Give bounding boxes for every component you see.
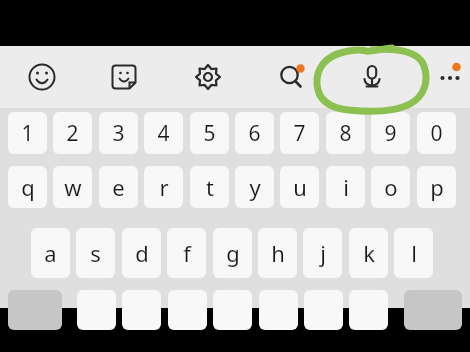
- button[interactable]: 8: [326, 112, 365, 154]
- button[interactable]: g: [213, 228, 252, 278]
- staticText: q: [21, 172, 35, 202]
- staticText: 0: [430, 119, 443, 148]
- button[interactable]: l: [394, 228, 433, 278]
- staticText: k: [363, 238, 375, 268]
- staticText: u: [293, 172, 307, 202]
- button[interactable]: [259, 290, 298, 330]
- button[interactable]: [77, 290, 116, 330]
- button[interactable]: t: [190, 166, 229, 208]
- staticText: 8: [339, 119, 352, 148]
- button[interactable]: [304, 290, 343, 330]
- button[interactable]: p: [417, 166, 456, 208]
- button[interactable]: Settings: [185, 54, 231, 100]
- button[interactable]: f: [167, 228, 206, 278]
- button[interactable]: d: [122, 228, 161, 278]
- button[interactable]: 6: [235, 112, 274, 154]
- button[interactable]: 3: [99, 112, 138, 154]
- staticText: p: [430, 172, 444, 202]
- button[interactable]: u: [280, 166, 319, 208]
- staticText: j: [320, 238, 326, 268]
- button[interactable]: w: [53, 166, 92, 208]
- button[interactable]: 4: [144, 112, 183, 154]
- button[interactable]: [168, 290, 207, 330]
- staticText: w: [64, 172, 82, 202]
- button[interactable]: 5: [190, 112, 229, 154]
- staticText: 7: [293, 119, 306, 148]
- staticText: i: [343, 172, 349, 202]
- button[interactable]: o: [371, 166, 410, 208]
- button[interactable]: i: [326, 166, 365, 208]
- staticText: 5: [203, 119, 216, 148]
- button[interactable]: k: [349, 228, 388, 278]
- button[interactable]: j: [303, 228, 342, 278]
- staticText: a: [44, 238, 57, 268]
- staticText: 4: [157, 119, 170, 148]
- staticText: e: [112, 172, 125, 202]
- button[interactable]: r: [144, 166, 183, 208]
- button[interactable]: h: [258, 228, 297, 278]
- staticText: g: [226, 238, 240, 268]
- button[interactable]: 1: [8, 112, 47, 154]
- button[interactable]: s: [76, 228, 115, 278]
- button[interactable]: [122, 290, 161, 330]
- button[interactable]: 2: [53, 112, 92, 154]
- button[interactable]: y: [235, 166, 274, 208]
- button[interactable]: More options: [427, 54, 470, 100]
- staticText: y: [249, 172, 261, 202]
- button[interactable]: Voice input: [349, 54, 395, 100]
- button[interactable]: Shift: [8, 290, 62, 330]
- staticText: 6: [248, 119, 261, 148]
- staticText: t: [206, 172, 214, 202]
- button[interactable]: 7: [280, 112, 319, 154]
- button[interactable]: e: [99, 166, 138, 208]
- staticText: r: [159, 172, 169, 202]
- staticText: o: [384, 172, 398, 202]
- button[interactable]: Backspace: [404, 290, 462, 330]
- staticText: h: [271, 238, 285, 268]
- button[interactable]: Stickers: [101, 54, 147, 100]
- button[interactable]: [349, 290, 388, 330]
- button[interactable]: q: [8, 166, 47, 208]
- staticText: l: [411, 238, 417, 268]
- staticText: 3: [112, 119, 125, 148]
- staticText: f: [183, 238, 191, 268]
- button[interactable]: a: [31, 228, 70, 278]
- staticText: 1: [21, 119, 34, 148]
- staticText: 9: [384, 119, 397, 148]
- staticText: 2: [66, 119, 79, 148]
- button[interactable]: 9: [371, 112, 410, 154]
- staticText: s: [90, 238, 101, 268]
- button[interactable]: Emoji: [19, 54, 65, 100]
- button[interactable]: Search: [269, 54, 315, 100]
- button[interactable]: 0: [417, 112, 456, 154]
- staticText: d: [135, 238, 149, 268]
- button[interactable]: [213, 290, 252, 330]
